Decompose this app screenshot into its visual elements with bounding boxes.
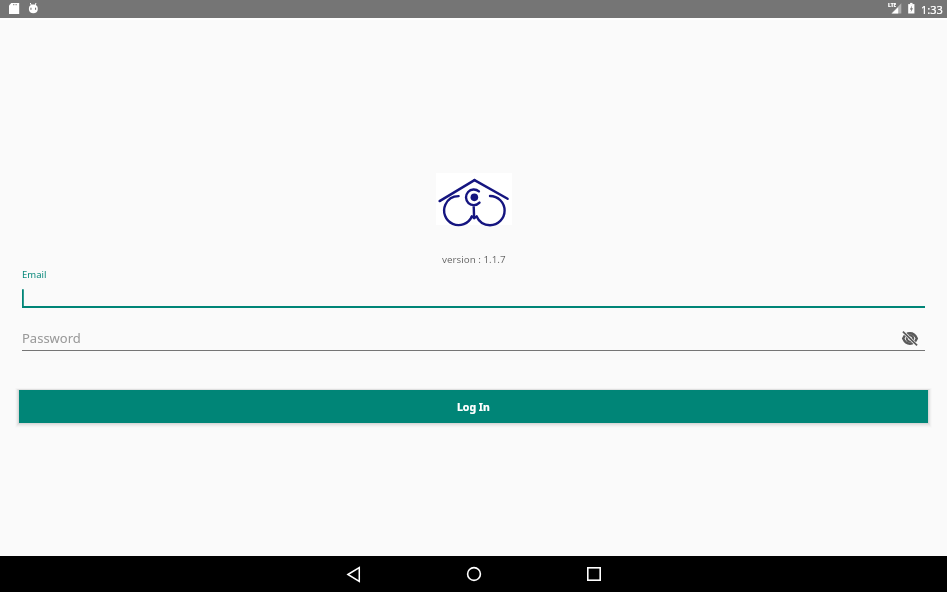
staticText: 1:33 (921, 2, 943, 17)
button[interactable]: Email (22, 269, 925, 308)
button[interactable]: Back (294, 556, 414, 592)
staticText: Email (22, 268, 47, 281)
button[interactable]: Recents (534, 556, 654, 592)
staticText: Password (22, 329, 81, 347)
button[interactable]: Toggle password visibility (898, 326, 922, 350)
staticText: LTE (888, 2, 897, 9)
button[interactable]: Home (414, 556, 534, 592)
staticText: Log In (457, 400, 490, 414)
button[interactable]: Password (22, 308, 925, 351)
staticText: version : 1.1.7 (442, 253, 506, 266)
button[interactable]: Log In (19, 390, 928, 423)
